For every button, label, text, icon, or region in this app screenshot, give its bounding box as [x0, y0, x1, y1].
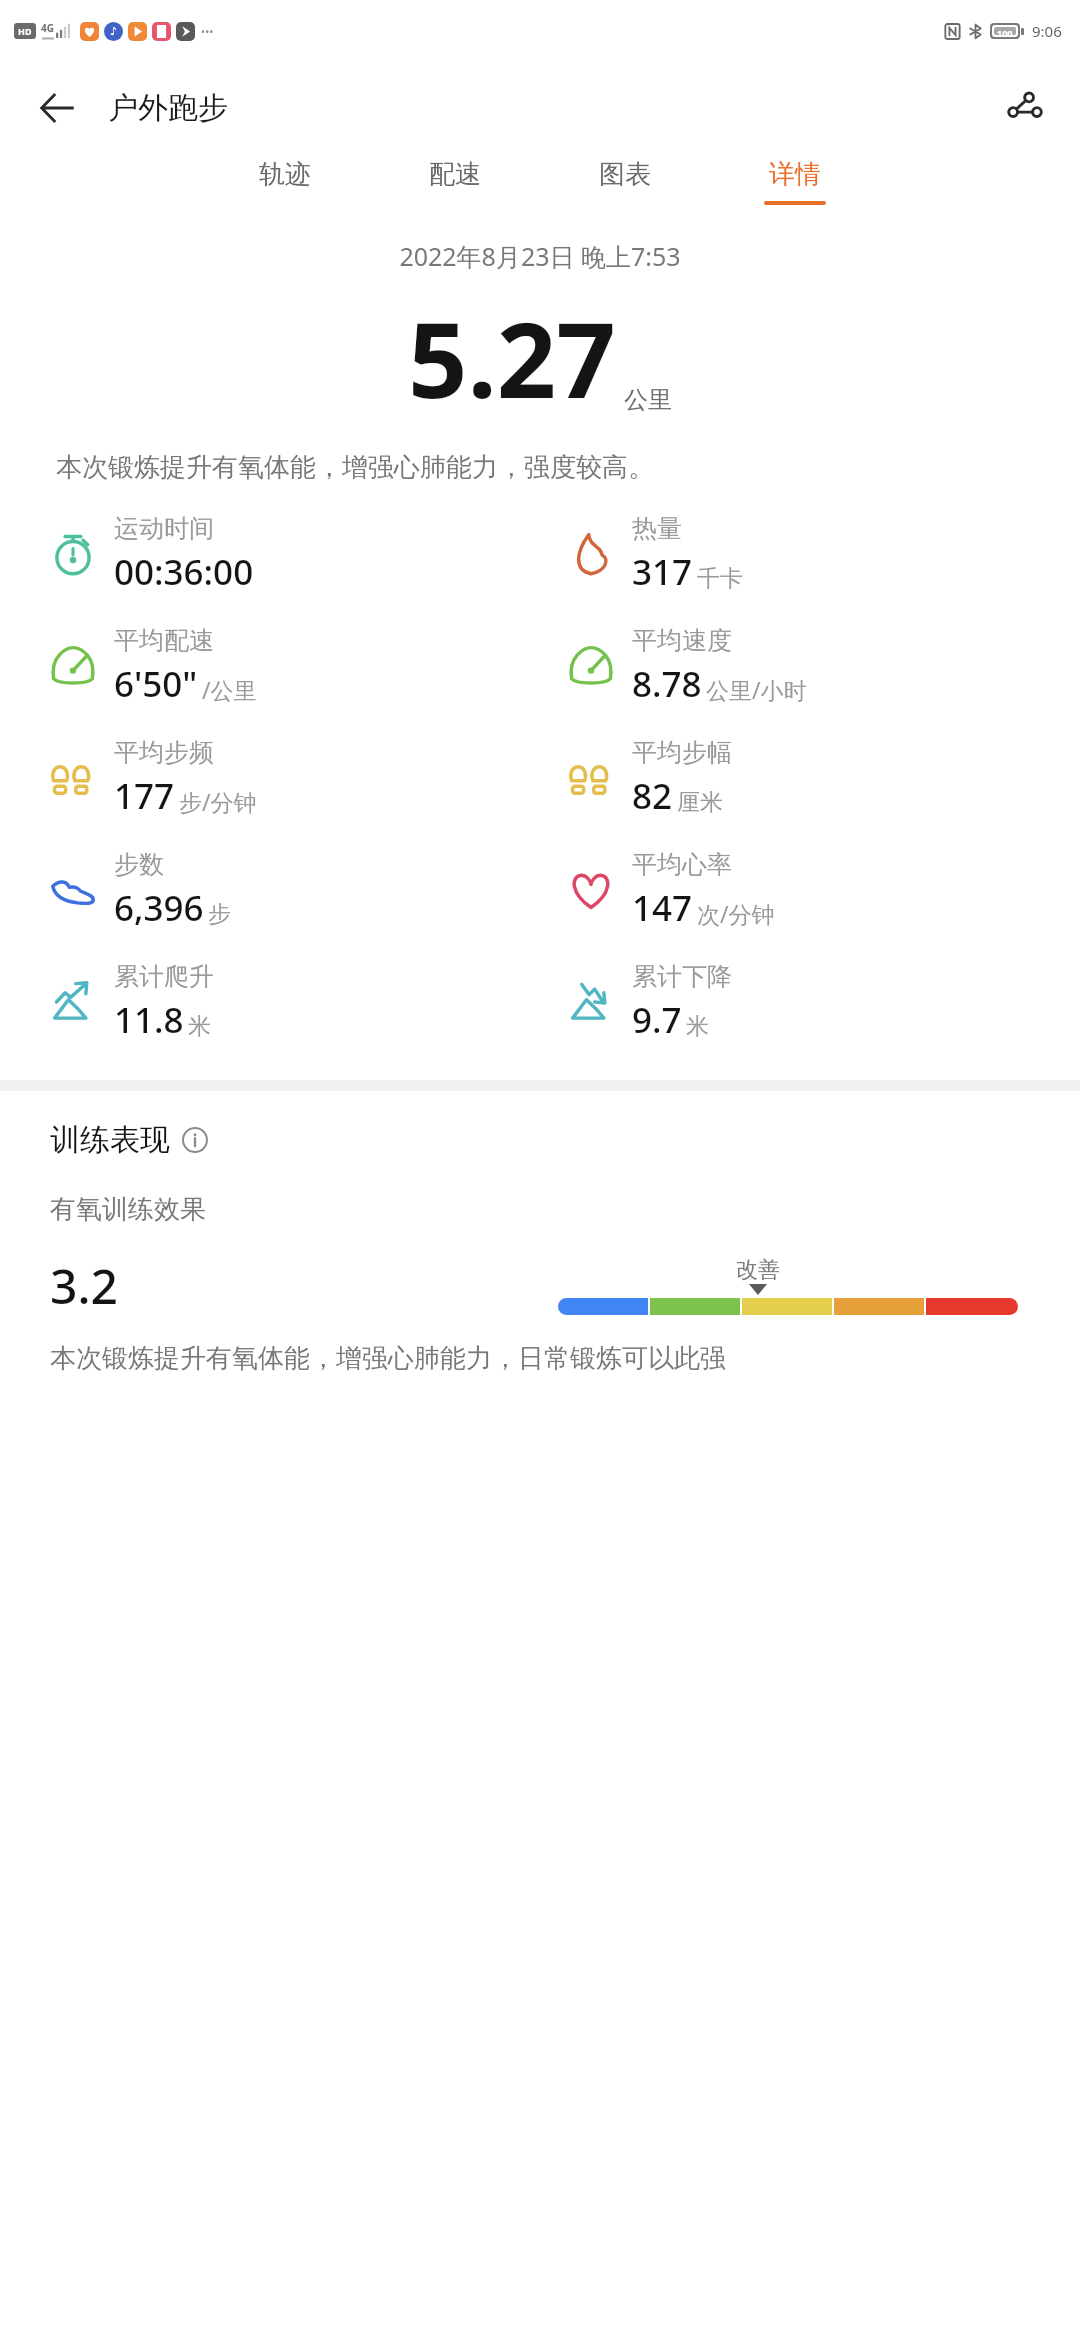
staticText: 配速: [429, 158, 481, 191]
button[interactable]: 图表: [588, 154, 662, 209]
staticText: 100: [997, 27, 1013, 35]
staticText: 详情: [769, 158, 821, 191]
staticText: 累计爬升: [114, 961, 214, 992]
staticText: 平均步频: [114, 737, 214, 768]
staticText: 82: [632, 772, 673, 820]
staticText: 改善: [736, 1256, 780, 1284]
staticText: 公里/小时: [706, 674, 807, 705]
staticText: 米: [686, 1012, 709, 1041]
staticText: 4G: [41, 21, 54, 35]
staticText: 6,396: [114, 884, 204, 932]
staticText: •••: [201, 24, 214, 39]
staticText: 热量: [632, 513, 682, 544]
staticText: 平均步幅: [632, 737, 732, 768]
button[interactable]: 累计爬升: [50, 946, 540, 1058]
button[interactable]: 轨迹: [248, 154, 322, 209]
button[interactable]: 平均步幅: [568, 722, 1080, 834]
staticText: 平均心率: [632, 849, 732, 880]
staticText: 2022年8月23日 晚上7:53: [0, 239, 1080, 273]
staticText: ♪: [110, 25, 118, 38]
staticText: 千卡: [697, 564, 743, 593]
button[interactable]: 平均配速: [50, 610, 540, 722]
staticText: 11.8: [114, 996, 184, 1044]
staticText: 累计下降: [632, 961, 732, 992]
staticText: 厘米: [677, 788, 723, 817]
staticText: 本次锻炼提升有氧体能，增强心肺能力，强度较高。: [56, 451, 1024, 484]
staticText: 步: [208, 900, 231, 929]
staticText: HD: [18, 25, 32, 37]
staticText: 6'50": [114, 660, 198, 708]
button[interactable]: 运动时间: [50, 498, 540, 610]
staticText: 次/分钟: [697, 898, 775, 929]
staticText: 轨迹: [259, 158, 311, 191]
staticText: 图表: [599, 158, 651, 191]
button[interactable]: Back: [28, 79, 86, 137]
staticText: 5.27: [408, 287, 616, 429]
staticText: 00:36:00: [114, 548, 254, 596]
other: Info: [182, 1127, 208, 1153]
staticText: 9:06: [1032, 21, 1062, 41]
button[interactable]: 累计下降: [568, 946, 1080, 1058]
staticText: 8.78: [632, 660, 702, 708]
staticText: 步/分钟: [179, 786, 257, 817]
staticText: 平均配速: [114, 625, 214, 656]
button[interactable]: 训练表现: [50, 1121, 208, 1159]
staticText: 9.7: [632, 996, 682, 1044]
staticText: 有氧训练效果: [50, 1193, 206, 1226]
button[interactable]: 详情: [758, 154, 832, 209]
button[interactable]: 平均心率: [568, 834, 1080, 946]
staticText: 训练表现: [50, 1121, 170, 1159]
button[interactable]: 平均速度: [568, 610, 1080, 722]
button[interactable]: 平均步频: [50, 722, 540, 834]
staticText: 317: [632, 548, 693, 596]
staticText: /公里: [202, 674, 257, 705]
staticText: 运动时间: [114, 513, 214, 544]
staticText: 平均速度: [632, 625, 732, 656]
staticText: 米: [188, 1012, 211, 1041]
staticText: 公里: [624, 385, 672, 415]
button[interactable]: Share: [996, 79, 1054, 137]
staticText: 本次锻炼提升有氧体能，增强心肺能力，日常锻炼可以此强: [50, 1342, 726, 1375]
staticText: 147: [632, 884, 693, 932]
staticText: 步数: [114, 849, 164, 880]
button[interactable]: 步数: [50, 834, 540, 946]
staticText: 3.2: [50, 1253, 118, 1318]
staticText: 户外跑步: [108, 89, 228, 127]
staticText: 177: [114, 772, 175, 820]
button[interactable]: 配速: [418, 154, 492, 209]
button[interactable]: 热量: [568, 498, 1080, 610]
